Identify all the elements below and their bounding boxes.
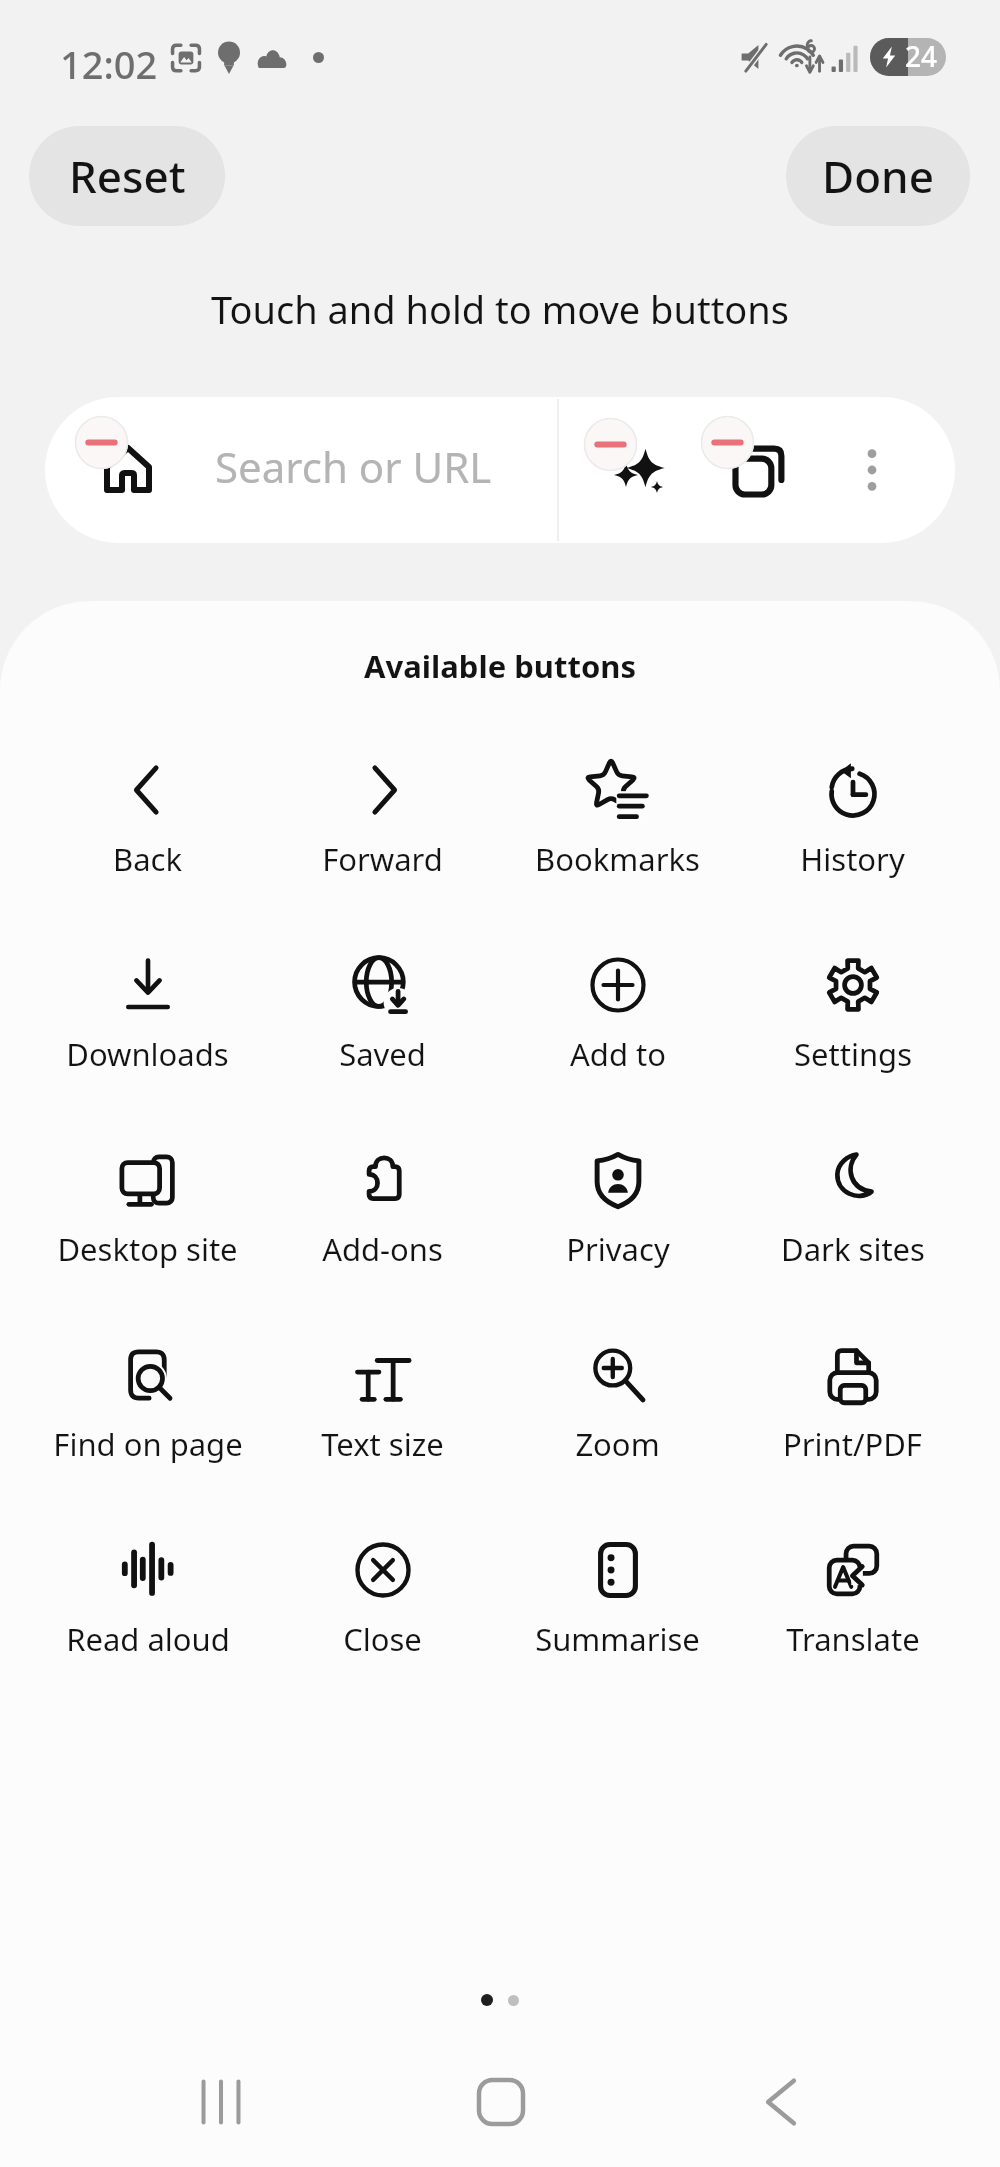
button[interactable]: Desktop site [30,1124,265,1284]
button[interactable]: Reset [29,126,225,226]
staticText: Desktop site [57,1228,238,1270]
button[interactable]: Dark sites [735,1124,970,1284]
button[interactable]: Back [30,734,265,894]
staticText: Bookmarks [535,838,700,880]
button[interactable]: Downloads [30,929,265,1089]
staticText: Add to [570,1033,666,1075]
staticText: Downloads [66,1033,229,1075]
staticText: Available buttons [0,645,1000,687]
button[interactable]: Forward [265,734,500,894]
button[interactable] [698,400,818,520]
staticText: Dark sites [781,1228,925,1270]
staticText: Summarise [535,1618,700,1660]
button[interactable]: Close [265,1514,500,1674]
staticText: 12:02 [60,38,158,90]
staticText: Saved [339,1033,426,1075]
staticText: Translate [786,1618,920,1660]
button[interactable]: Privacy [500,1124,735,1284]
button[interactable]: History [735,734,970,894]
staticText: Add-ons [322,1228,443,1270]
staticText: Reset [69,146,186,206]
staticText: Find on page [53,1423,243,1465]
button[interactable]: Done [786,126,970,226]
staticText: Privacy [566,1228,670,1270]
button[interactable]: Home [431,2037,571,2167]
staticText: History [800,838,905,880]
button[interactable]: Add to [500,929,735,1089]
button[interactable]: Zoom [500,1319,735,1479]
button[interactable]: Text size [265,1319,500,1479]
button[interactable]: Bookmarks [500,734,735,894]
button[interactable]: Read aloud [30,1514,265,1674]
button[interactable]: Settings [735,929,970,1089]
staticText: Settings [794,1033,912,1075]
button[interactable]: Find on page [30,1319,265,1479]
button[interactable]: Add-ons [265,1124,500,1284]
staticText: Done [822,146,934,206]
button[interactable]: Back [711,2037,851,2167]
staticText: Read aloud [66,1618,230,1660]
button[interactable]: Summarise [500,1514,735,1674]
staticText: Zoom [575,1423,660,1465]
button[interactable]: Print/PDF [735,1319,970,1479]
button[interactable] [581,400,701,520]
button[interactable] [72,400,212,540]
staticText: Print/PDF [783,1423,922,1465]
staticText: Close [343,1618,422,1660]
button[interactable]: More options [832,397,912,543]
staticText: Text size [321,1423,444,1465]
staticText: 24 [905,38,938,75]
button[interactable]: Saved [265,929,500,1089]
staticText: Forward [322,838,443,880]
staticText: Search or URL [215,438,492,495]
button[interactable]: Translate [735,1514,970,1674]
staticText: Touch and hold to move buttons [0,283,1000,335]
button[interactable]: Recents [151,2037,291,2167]
staticText: Back [113,838,182,880]
